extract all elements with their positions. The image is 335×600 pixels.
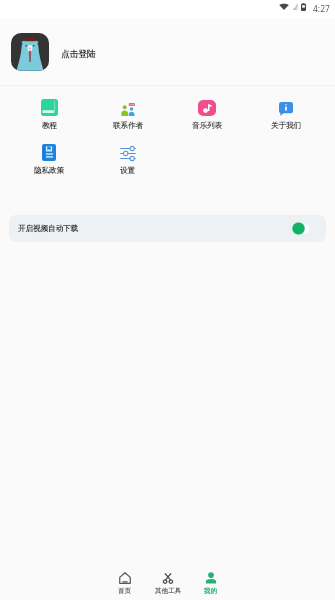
staticText: 音乐列表 [192, 121, 222, 130]
button[interactable]: 隐私政策 [10, 144, 88, 175]
staticText: 教程 [42, 121, 57, 130]
button[interactable]: 教程 [10, 99, 88, 130]
button[interactable]: 首页 [103, 572, 146, 595]
button[interactable]: 其他工具 [146, 572, 189, 595]
button[interactable]: 开启视频自动下载 [9, 215, 326, 242]
button[interactable]: Toggle auto download [292, 222, 311, 235]
staticText: 点击登陆 [61, 49, 96, 60]
staticText: 其他工具 [155, 587, 181, 595]
staticText: 首页 [118, 587, 131, 595]
staticText: 4:27 [313, 3, 330, 15]
button[interactable]: 联系作者 [88, 99, 167, 130]
button[interactable]: 点击登陆 [0, 18, 335, 85]
button[interactable]: 设置 [88, 144, 167, 175]
staticText: 开启视频自动下载 [18, 224, 78, 233]
staticText: 设置 [120, 166, 135, 175]
button[interactable]: 我的 [189, 572, 232, 595]
button[interactable]: 关于我们 [246, 99, 325, 130]
staticText: 隐私政策 [34, 166, 64, 175]
staticText: 我的 [204, 587, 217, 595]
staticText: 联系作者 [113, 121, 143, 130]
staticText: 关于我们 [271, 121, 301, 130]
button[interactable]: 音乐列表 [167, 99, 246, 130]
